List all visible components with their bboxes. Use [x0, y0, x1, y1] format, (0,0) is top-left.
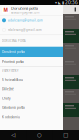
button[interactable]: Recents	[53, 130, 79, 140]
button[interactable]: adalesong@gmail.com	[0, 15, 63, 25]
button[interactable]: Prioritná pošta	[0, 57, 63, 66]
button[interactable]: K odoslaniu	[0, 112, 63, 122]
staticText: ○	[37, 132, 42, 138]
staticText: adalesong@gmail.com	[11, 11, 39, 14]
staticText: M	[3, 7, 7, 13]
staticText: ▾ ◣ ▮	[55, 0, 64, 5]
staticText: Chaty	[2, 96, 11, 100]
button[interactable]: Dôležité	[0, 84, 63, 94]
button[interactable]: Chaty	[0, 94, 63, 103]
staticText: 20:36	[64, 0, 78, 6]
staticText: Prioritná pošta	[2, 60, 24, 64]
button[interactable]: M	[0, 5, 63, 15]
staticText: K odoslaniu	[2, 115, 20, 119]
staticText: □	[63, 132, 68, 138]
staticText: Dôležité	[2, 87, 14, 91]
staticText: Doručená pošta	[11, 6, 38, 11]
button[interactable]: Home	[26, 130, 53, 140]
staticText: DORUČENÁ POŠTA	[2, 39, 26, 43]
button[interactable]: S hviezdičkou	[0, 75, 63, 84]
button[interactable]: Back	[0, 130, 26, 140]
staticText: Doručená pošta	[2, 50, 25, 54]
button[interactable]: rdalesong@gmail.com	[0, 25, 63, 35]
staticText: ◁	[11, 132, 15, 138]
button[interactable]: Doručená pošta	[0, 47, 63, 57]
staticText: S hviezdičkou	[2, 78, 23, 82]
staticText: Odoslaná pošta	[2, 106, 25, 110]
staticText: rdalesong@gmail.com	[8, 28, 42, 32]
button[interactable]: Odoslaná pošta	[0, 103, 63, 112]
staticText: VŠETKY ŠTÍTKY	[2, 69, 18, 73]
staticText: adalesong@gmail.com	[8, 18, 43, 22]
